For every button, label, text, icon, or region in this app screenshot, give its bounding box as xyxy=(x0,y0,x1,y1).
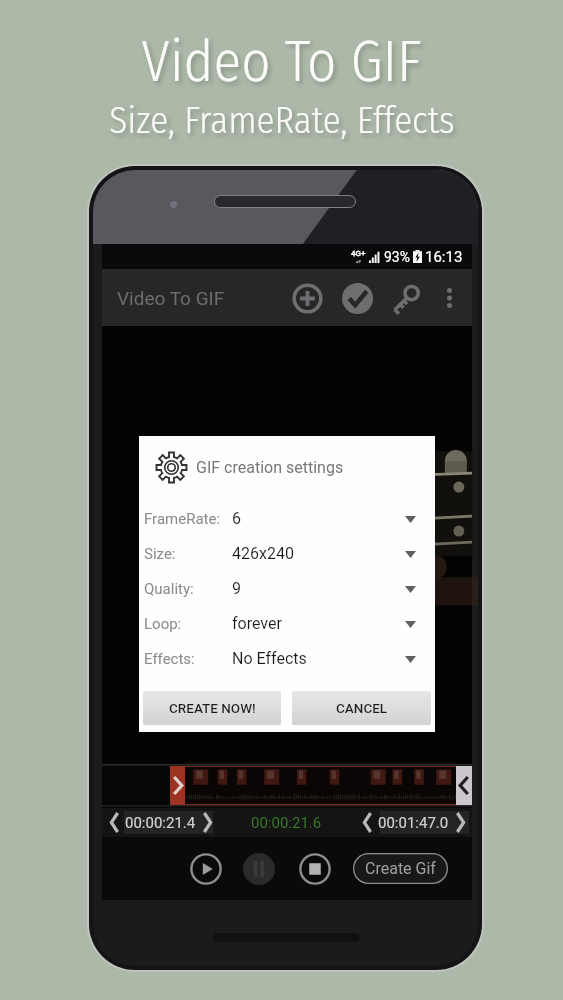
staticText: forever xyxy=(232,614,282,633)
staticText: No Effects xyxy=(232,649,307,668)
button[interactable]: Quality: xyxy=(139,571,435,606)
staticText: 9 xyxy=(232,579,241,598)
button[interactable]: CREATE NOW! xyxy=(143,691,281,725)
button[interactable]: Play xyxy=(190,853,222,885)
staticText: 4G+ xyxy=(351,249,366,258)
staticText: Video To GIF xyxy=(117,287,225,309)
button[interactable]: Step forward xyxy=(449,809,471,836)
button[interactable]: Confirm xyxy=(335,276,379,320)
button[interactable]: CANCEL xyxy=(292,691,431,725)
staticText: 00:00:21.6 xyxy=(251,814,322,832)
staticText: CANCEL xyxy=(336,700,388,716)
button[interactable]: More options xyxy=(431,280,467,316)
staticText: Size, FrameRate, Effects xyxy=(109,98,455,142)
staticText: Effects: xyxy=(144,650,195,668)
button[interactable]: Add video xyxy=(285,276,329,320)
button[interactable]: Create Gif xyxy=(353,853,448,884)
staticText: 00:01:47.0 xyxy=(378,814,449,832)
staticText: Create Gif xyxy=(365,859,436,878)
staticText: 426x240 xyxy=(232,544,294,563)
button[interactable]: Stop xyxy=(299,853,331,885)
staticText: 6 xyxy=(232,509,241,528)
staticText: ▴▾ xyxy=(356,258,362,264)
button[interactable]: Pause xyxy=(243,853,275,885)
staticText: 16:13 xyxy=(425,248,463,266)
button[interactable]: Step back xyxy=(103,809,125,836)
button[interactable]: FrameRate: xyxy=(139,501,435,536)
staticText: FrameRate: xyxy=(144,510,221,528)
button[interactable]: Loop: xyxy=(139,606,435,641)
staticText: Size: xyxy=(144,545,176,563)
staticText: Loop: xyxy=(144,615,182,633)
staticText: 93% xyxy=(384,249,410,265)
button[interactable]: Trim start xyxy=(170,766,185,805)
button[interactable]: Effects: xyxy=(139,641,435,676)
button[interactable]: Step back xyxy=(356,809,378,836)
staticText: CREATE NOW! xyxy=(169,700,256,716)
staticText: Video To GIF xyxy=(141,28,422,96)
button[interactable]: Step forward xyxy=(196,809,218,836)
button[interactable]: Unlock pro version xyxy=(384,276,428,320)
staticText: 00:00:21.4 xyxy=(125,814,196,832)
staticText: Quality: xyxy=(144,580,194,598)
button[interactable]: Size: xyxy=(139,536,435,571)
staticText: GIF creation settings xyxy=(196,458,344,477)
button[interactable]: Trim end xyxy=(456,766,472,805)
